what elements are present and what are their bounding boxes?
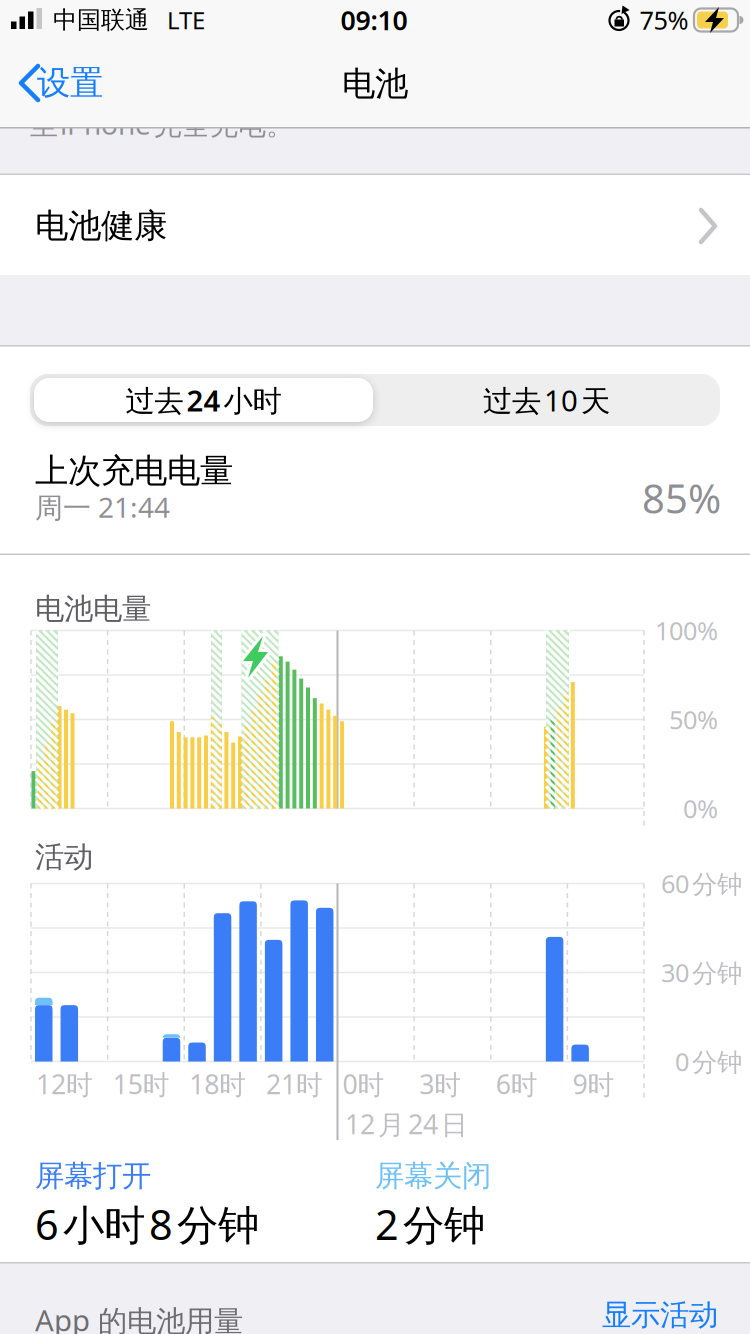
- button[interactable]: 过去 10 天: [377, 378, 716, 422]
- staticText: 85%: [642, 471, 721, 524]
- staticText: 屏幕关闭: [375, 1158, 491, 1194]
- button[interactable]: 显示活动: [518, 1297, 718, 1333]
- staticText: 中国联通: [53, 5, 149, 35]
- staticText: LTE: [167, 4, 205, 36]
- staticText: 显示活动: [602, 1297, 718, 1333]
- staticText: 100%: [655, 614, 718, 647]
- staticText: 屏幕打开: [35, 1158, 151, 1194]
- staticText: 75%: [639, 3, 688, 37]
- staticText: 电池: [342, 63, 408, 104]
- staticText: 9时: [572, 1066, 614, 1102]
- button[interactable]: 返回设置: [18, 64, 128, 104]
- staticText: 2 分钟: [375, 1197, 485, 1251]
- staticText: 15时: [113, 1066, 170, 1102]
- staticText: App 的电池用量: [35, 1300, 243, 1334]
- staticText: 12时: [36, 1066, 93, 1102]
- staticText: 6 小时 8 分钟: [35, 1197, 259, 1251]
- staticText: 3时: [419, 1066, 461, 1102]
- staticText: 活动: [35, 839, 93, 875]
- staticText: 09:10: [340, 2, 407, 38]
- staticText: 至 iPhone 完全充电。: [30, 105, 294, 143]
- button[interactable]: 电池健康: [0, 177, 750, 275]
- staticText: 0%: [683, 792, 718, 825]
- staticText: 0时: [342, 1066, 384, 1102]
- staticText: 12 月 24 日: [345, 1106, 468, 1142]
- staticText: 过去 24 小时: [125, 380, 281, 419]
- staticText: 50%: [669, 703, 718, 736]
- staticText: 0 分钟: [675, 1045, 742, 1078]
- staticText: 30 分钟: [661, 956, 742, 989]
- staticText: 周一 21:44: [35, 488, 170, 526]
- staticText: 过去 10 天: [483, 380, 610, 419]
- staticText: 60 分钟: [661, 867, 742, 900]
- staticText: 上次充电电量: [35, 450, 233, 491]
- staticText: 21时: [266, 1066, 323, 1102]
- staticText: 18时: [189, 1066, 246, 1102]
- button[interactable]: 过去 24 小时: [34, 378, 373, 422]
- staticText: 6时: [496, 1066, 538, 1102]
- staticText: 电池电量: [35, 591, 151, 627]
- staticText: 电池健康: [35, 205, 167, 246]
- staticText: 设置: [37, 62, 103, 103]
